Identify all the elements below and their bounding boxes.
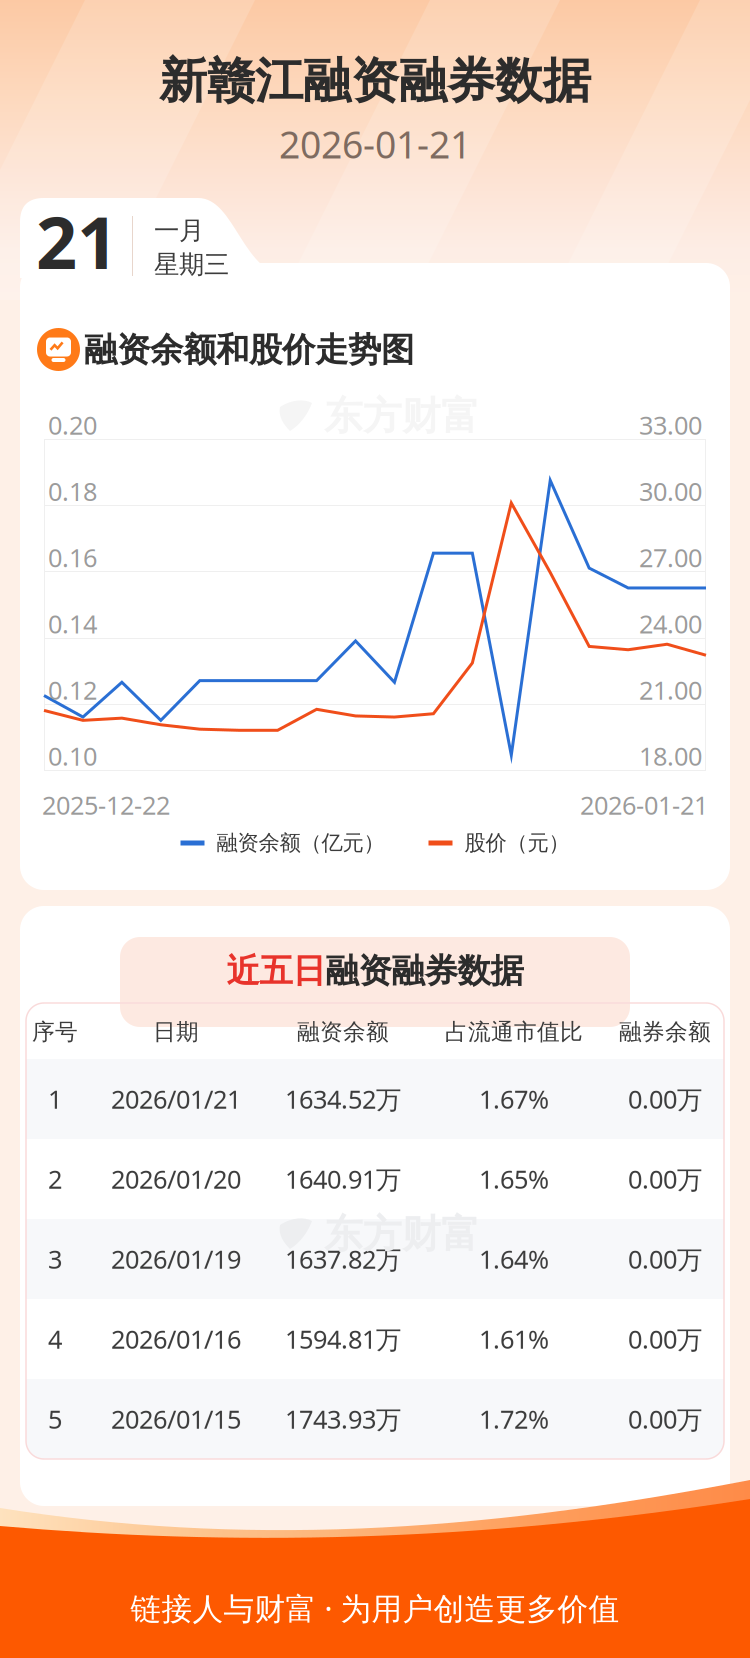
staticText: 一月 [154, 215, 204, 246]
staticText: 近五日 [226, 950, 325, 991]
staticText: 0.00万 [628, 1082, 702, 1116]
staticText: 1.64% [479, 1242, 549, 1276]
staticText: 融资余额 [297, 1018, 389, 1046]
staticText: 0.00万 [628, 1402, 702, 1436]
staticText: 21 [36, 193, 118, 289]
staticText: 1.67% [479, 1082, 549, 1116]
staticText: 24.00 [639, 607, 702, 640]
staticText: 2026/01/21 [111, 1082, 241, 1116]
staticText: 1 [48, 1082, 62, 1116]
staticText: 1743.93万 [285, 1402, 401, 1436]
staticText: 2025-12-22 [42, 788, 170, 822]
staticText: 2026-01-21 [279, 119, 471, 169]
staticText: 0.20 [48, 408, 97, 442]
staticText: 融券余额 [619, 1018, 711, 1046]
staticText: 1594.81万 [285, 1322, 401, 1356]
staticText: 占流通市值比 [445, 1018, 583, 1046]
staticText: 2026-01-21 [580, 788, 708, 822]
staticText: 4 [48, 1322, 62, 1356]
staticText: 0.00万 [628, 1322, 702, 1356]
staticText: 1.72% [479, 1402, 549, 1436]
staticText: 1637.82万 [285, 1242, 401, 1276]
staticText: 18.00 [639, 739, 702, 773]
staticText: 0.00万 [628, 1242, 702, 1276]
staticText: 33.00 [639, 408, 702, 442]
staticText: 新赣江融资融券数据 [159, 51, 591, 110]
staticText: 27.00 [639, 541, 702, 574]
staticText: 2026/01/20 [111, 1162, 241, 1196]
staticText: 1634.52万 [285, 1082, 401, 1116]
staticText: 东方财富 [324, 1210, 480, 1258]
staticText: 5 [48, 1402, 62, 1436]
staticText: 1640.91万 [285, 1162, 401, 1196]
staticText: 0.10 [48, 739, 97, 773]
staticText: 融资余额和股价走势图 [84, 329, 414, 370]
staticText: 融资融券数据 [325, 950, 523, 991]
staticText: 东方财富 [324, 392, 480, 440]
staticText: 0.12 [48, 673, 97, 707]
staticText: 1.65% [479, 1162, 549, 1196]
staticText: 0.18 [48, 474, 97, 508]
staticText: 2026/01/19 [111, 1242, 241, 1276]
staticText: 21.00 [639, 673, 702, 707]
staticText: 2026/01/16 [111, 1322, 241, 1356]
staticText: 30.00 [639, 474, 702, 508]
staticText: 2 [48, 1162, 62, 1196]
staticText: 0.14 [48, 607, 97, 640]
staticText: 链接人与财富 · 为用户创造更多价值 [130, 1588, 619, 1628]
staticText: 0.16 [48, 541, 97, 574]
staticText: 2026/01/15 [111, 1402, 241, 1436]
staticText: 股价（元） [464, 830, 569, 856]
staticText: 日期 [153, 1018, 199, 1046]
staticText: 星期三 [154, 249, 229, 280]
staticText: 融资余额（亿元） [216, 830, 384, 856]
staticText: 0.00万 [628, 1162, 702, 1196]
staticText: 1.61% [479, 1322, 549, 1356]
staticText: 3 [48, 1242, 62, 1276]
staticText: 序号 [32, 1018, 78, 1046]
